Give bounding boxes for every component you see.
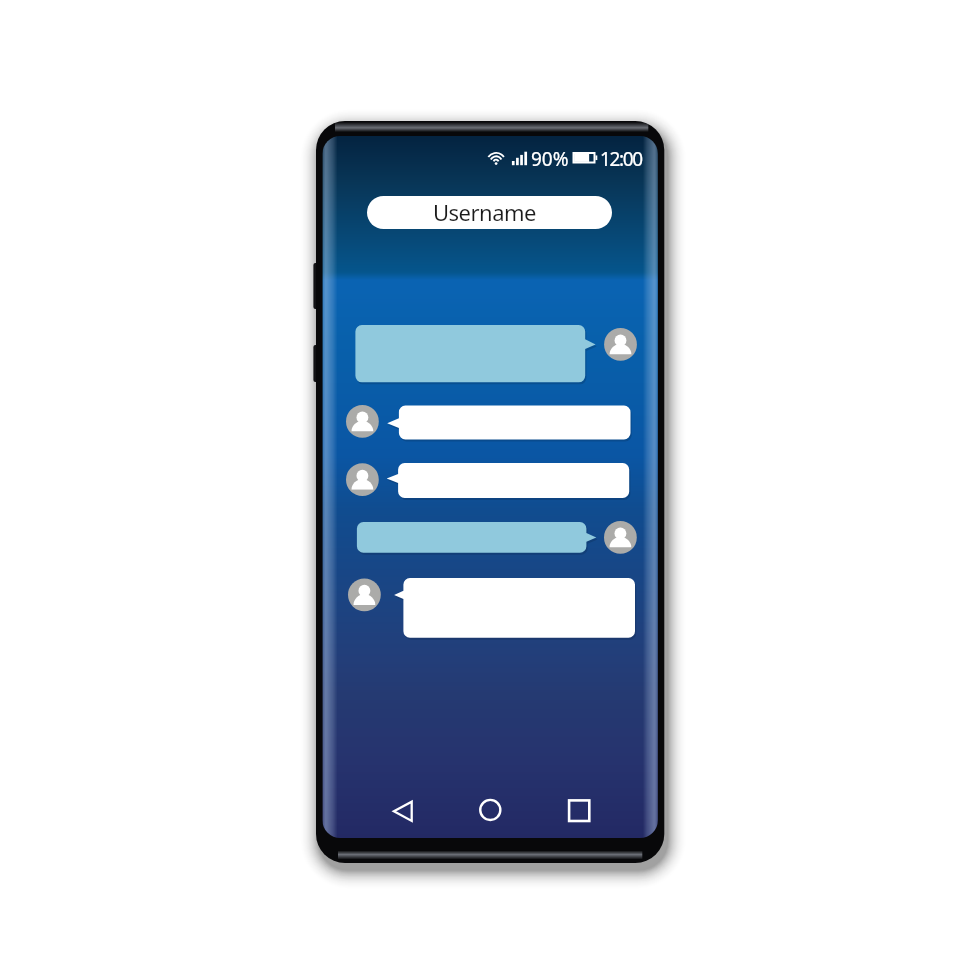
button[interactable]: Message 5 [348, 578, 644, 638]
staticText: Username [433, 197, 537, 227]
button[interactable]: Message 3 [346, 463, 641, 498]
button[interactable]: Message 2 [346, 405, 642, 439]
button[interactable]: Message 4 [347, 521, 637, 554]
button[interactable]: Message 1 [345, 325, 637, 382]
button[interactable]: Username [367, 196, 612, 229]
button[interactable]: Home [472, 792, 509, 829]
staticText: 12:00 [600, 146, 642, 172]
button[interactable]: Recent apps [561, 792, 598, 829]
staticText: 90% [531, 146, 569, 172]
button[interactable]: Back [385, 792, 422, 829]
